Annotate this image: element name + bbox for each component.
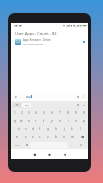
staticText: s [25, 127, 27, 131]
button[interactable]: ?123 [12, 142, 23, 148]
staticText: q [14, 119, 16, 123]
staticText: 1 [14, 111, 16, 115]
button[interactable]: 6 [48, 109, 56, 117]
button[interactable]: 0 [80, 109, 88, 117]
staticText: abc [25, 104, 29, 107]
button[interactable]: अ [13, 103, 21, 107]
staticText: i [68, 119, 69, 123]
button[interactable]: User Apps : Count - 82 [11, 28, 88, 38]
button[interactable]: Emoji [76, 103, 80, 107]
staticText: w [20, 119, 23, 123]
button[interactable]: Back [14, 95, 18, 99]
staticText: h [55, 127, 57, 131]
button[interactable]: 7 [56, 109, 64, 117]
button[interactable]: Shift [11, 133, 22, 141]
button[interactable]: w [18, 117, 25, 125]
button[interactable]: Home [45, 150, 54, 159]
button[interactable]: 8 [64, 109, 72, 117]
button[interactable]: o [72, 117, 80, 125]
button[interactable]: j [60, 125, 68, 133]
staticText: . [71, 143, 72, 147]
button[interactable]: n [60, 133, 68, 141]
button[interactable]: 2 [18, 109, 25, 117]
staticText: 3 [28, 111, 30, 115]
staticText: 5 [43, 111, 45, 115]
button[interactable]: u [56, 117, 64, 125]
staticText: u [59, 119, 61, 123]
staticText: 6 [51, 111, 53, 115]
staticText: r [35, 119, 37, 123]
staticText: app [26, 95, 31, 99]
staticText: j [64, 127, 65, 131]
staticText: n [63, 135, 65, 139]
staticText: b [55, 135, 57, 139]
button[interactable]: y [48, 117, 56, 125]
staticText: z [25, 135, 27, 139]
staticText: f [39, 127, 41, 131]
button[interactable]: 5 [40, 109, 48, 117]
staticText: Apps Reviewer - Delete [23, 38, 51, 42]
staticText: 7 [59, 111, 61, 115]
button[interactable]: Emoji [23, 142, 30, 148]
staticText: 2 [21, 111, 23, 115]
button[interactable]: Apps Reviewer - Delete [11, 37, 88, 47]
button[interactable]: x [29, 133, 36, 141]
button[interactable]: z [22, 133, 29, 141]
staticText: 8 [67, 111, 69, 115]
button[interactable]: Select app [83, 41, 85, 43]
staticText: e [28, 119, 30, 123]
staticText: 0 [83, 111, 85, 115]
staticText: ?123 [15, 144, 20, 147]
button[interactable]: b [52, 133, 60, 141]
staticText: v [47, 135, 49, 139]
staticText: अ [16, 103, 18, 107]
staticText: y [51, 119, 53, 123]
button[interactable]: c [36, 133, 44, 141]
button[interactable]: Search [75, 142, 87, 148]
button[interactable]: More options [82, 95, 85, 98]
staticText: l [80, 127, 81, 131]
button[interactable]: f [36, 125, 44, 133]
button[interactable]: m [68, 133, 76, 141]
staticText: o [75, 119, 77, 123]
staticText: 4 [35, 111, 37, 115]
staticText: d [32, 127, 34, 131]
button[interactable]: abc [22, 103, 31, 107]
button[interactable]: Clear [76, 95, 80, 99]
staticText: k [71, 127, 73, 131]
button[interactable]: l [76, 125, 84, 133]
staticText: a [18, 127, 20, 131]
button[interactable]: a [15, 125, 22, 133]
button[interactable]: 1 [11, 109, 18, 117]
staticText: p [83, 119, 85, 123]
button[interactable]: p [80, 117, 88, 125]
staticText: 9 [75, 111, 77, 115]
staticText: com.mobile.appsrev [23, 43, 43, 46]
button[interactable]: t [40, 117, 48, 125]
button[interactable]: e [25, 117, 32, 125]
button[interactable]: 9 [72, 109, 80, 117]
button[interactable]: Back [60, 150, 69, 159]
button[interactable]: i [64, 117, 72, 125]
button[interactable]: d [29, 125, 36, 133]
button[interactable]: 4 [32, 109, 40, 117]
button[interactable]: 3 [25, 109, 32, 117]
button[interactable]: Recents [30, 150, 39, 159]
staticText: t [43, 119, 45, 123]
button[interactable]: s [22, 125, 29, 133]
staticText: x [32, 135, 34, 139]
staticText: c [39, 135, 41, 139]
staticText: g [47, 127, 49, 131]
staticText: m [71, 135, 74, 139]
button[interactable]: k [68, 125, 76, 133]
button[interactable]: v [44, 133, 52, 141]
button[interactable]: Expand [82, 103, 86, 107]
button[interactable]: r [32, 117, 40, 125]
button[interactable]: Backspace [76, 133, 88, 141]
button[interactable]: q [11, 117, 18, 125]
button[interactable]: g [44, 125, 52, 133]
button[interactable]: h [52, 125, 60, 133]
staticText: User Apps : Count - 82 [15, 31, 57, 36]
